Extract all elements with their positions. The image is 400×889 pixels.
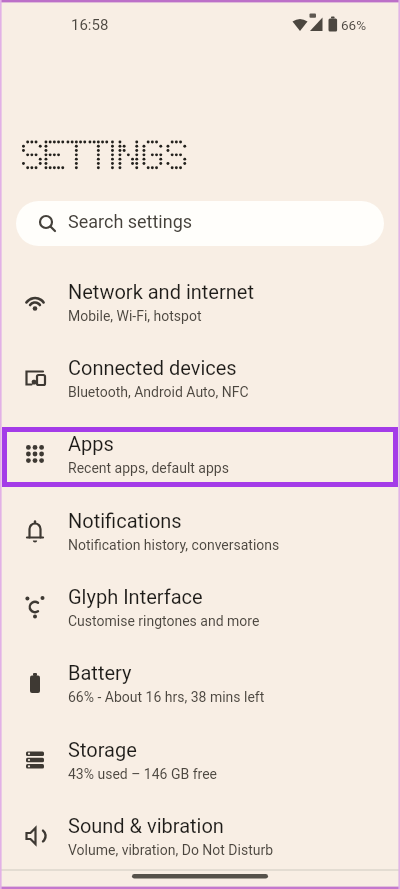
staticText: Battery [68,661,132,684]
staticText: 43% used – 146 GB free [68,766,217,782]
button[interactable]: Battery [0,645,400,721]
staticText: Bluetooth, Android Auto, NFC [68,384,249,400]
staticText: Search settings [68,211,193,232]
button[interactable]: Apps [0,416,400,492]
staticText: 16:58 [71,16,109,34]
button[interactable]: Notifications [0,493,400,569]
staticText: Volume, vibration, Do Not Disturb [68,842,274,858]
button[interactable]: Connected devices [0,340,400,416]
staticText: Glyph Interface [68,585,203,608]
button[interactable]: Sound & vibration [0,798,400,874]
staticText: Connected devices [68,356,237,379]
button[interactable]: Storage [0,722,400,798]
staticText: Storage [68,738,137,761]
staticText: Mobile, Wi-Fi, hotspot [68,308,202,324]
button[interactable]: Network and internet [0,264,400,340]
staticText: Notification history, conversations [68,537,280,553]
staticText: 66% [341,17,367,33]
staticText: Recent apps, default apps [68,460,229,476]
staticText: Apps [68,432,114,455]
button[interactable]: Glyph Interface [0,569,400,645]
staticText: 66% - About 16 hrs, 38 mins left [68,689,265,705]
staticText: Customise ringtones and more [68,613,260,629]
staticText: Network and internet [68,280,254,303]
button[interactable]: Search settings [16,201,384,246]
staticText: Notifications [68,509,182,532]
staticText: Sound & vibration [68,814,224,837]
